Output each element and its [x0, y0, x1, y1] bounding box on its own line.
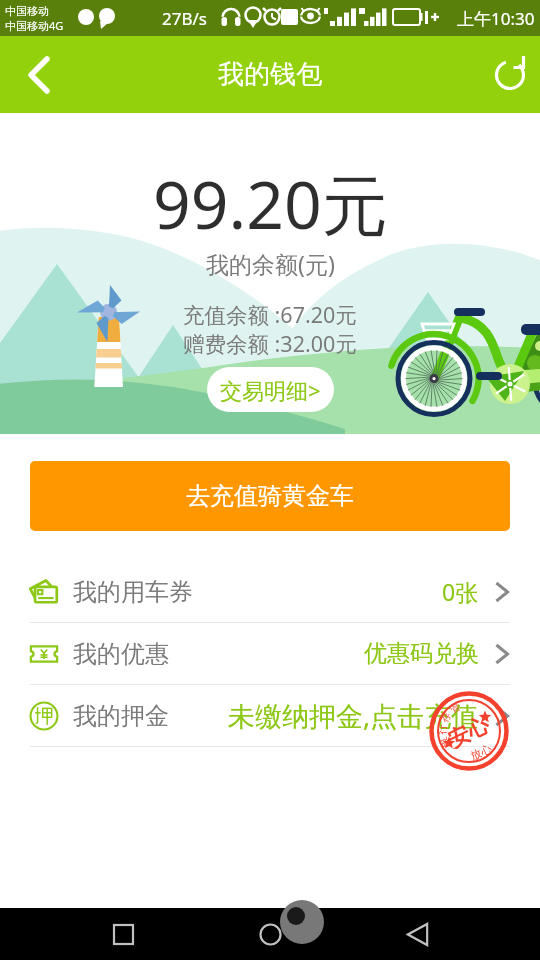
- staticText: 我的优惠: [73, 639, 169, 669]
- staticText: 中国移动: [5, 4, 49, 18]
- button[interactable]: 交易明细>: [207, 367, 334, 412]
- staticText: 赠费余额 :32.00元: [183, 329, 357, 358]
- button[interactable]: 我的优惠: [0, 623, 540, 684]
- staticText: 我的押金: [73, 701, 169, 731]
- staticText: 充值余额 :67.20元: [183, 300, 357, 329]
- button[interactable]: Back: [0, 44, 62, 106]
- staticText: 去充值骑黄金车: [186, 481, 354, 511]
- staticText: 27B/s: [162, 7, 207, 30]
- staticText: 未缴纳押金,点击充值: [228, 697, 479, 734]
- staticText: 中国移动4G: [5, 18, 64, 33]
- staticText: 我的钱包: [218, 58, 322, 91]
- button[interactable]: Refresh: [478, 44, 540, 106]
- button[interactable]: Back: [393, 910, 441, 958]
- button[interactable]: 去充值骑黄金车: [30, 461, 510, 531]
- button[interactable]: 我的用车券: [0, 561, 540, 622]
- staticText: 优惠码兑换: [364, 639, 479, 668]
- staticText: 我的余额(元): [206, 248, 335, 279]
- staticText: 上午10:30: [457, 7, 535, 30]
- staticText: 交易明细>: [220, 375, 321, 405]
- staticText: 0张: [442, 576, 479, 607]
- staticText: 我的用车券: [73, 577, 193, 607]
- staticText: 99.20元: [153, 158, 388, 248]
- button[interactable]: Recents: [99, 910, 147, 958]
- button[interactable]: Home: [246, 910, 294, 958]
- button[interactable]: 我的押金: [0, 685, 540, 746]
